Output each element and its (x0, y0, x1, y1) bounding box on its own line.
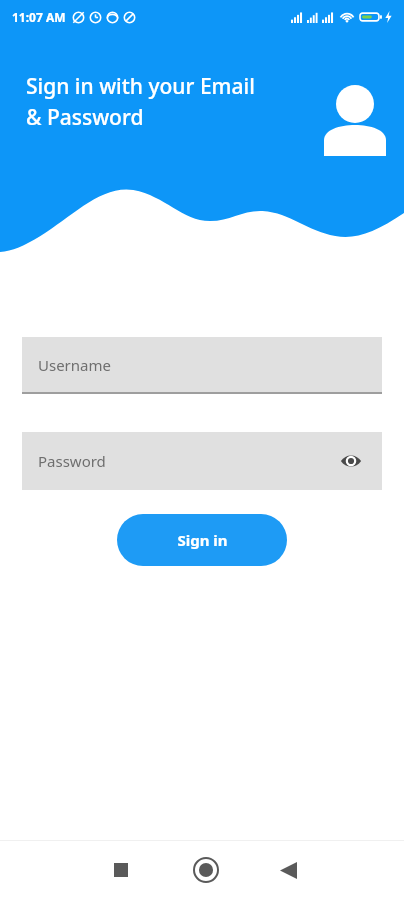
button[interactable]: Back (267, 849, 309, 891)
staticText: Password (38, 451, 106, 471)
button[interactable]: Recent apps (100, 849, 142, 891)
button[interactable]: Home (185, 849, 227, 891)
staticText: Username (38, 355, 111, 375)
staticText: Sign in (177, 530, 228, 550)
button[interactable]: Username (22, 337, 382, 394)
button[interactable]: Show password (336, 446, 366, 476)
button[interactable]: Sign in (117, 514, 287, 566)
button[interactable]: Password (22, 432, 382, 490)
staticText: 11:07 AM (12, 9, 66, 25)
staticText: Sign in with your Email & Password (26, 72, 255, 131)
